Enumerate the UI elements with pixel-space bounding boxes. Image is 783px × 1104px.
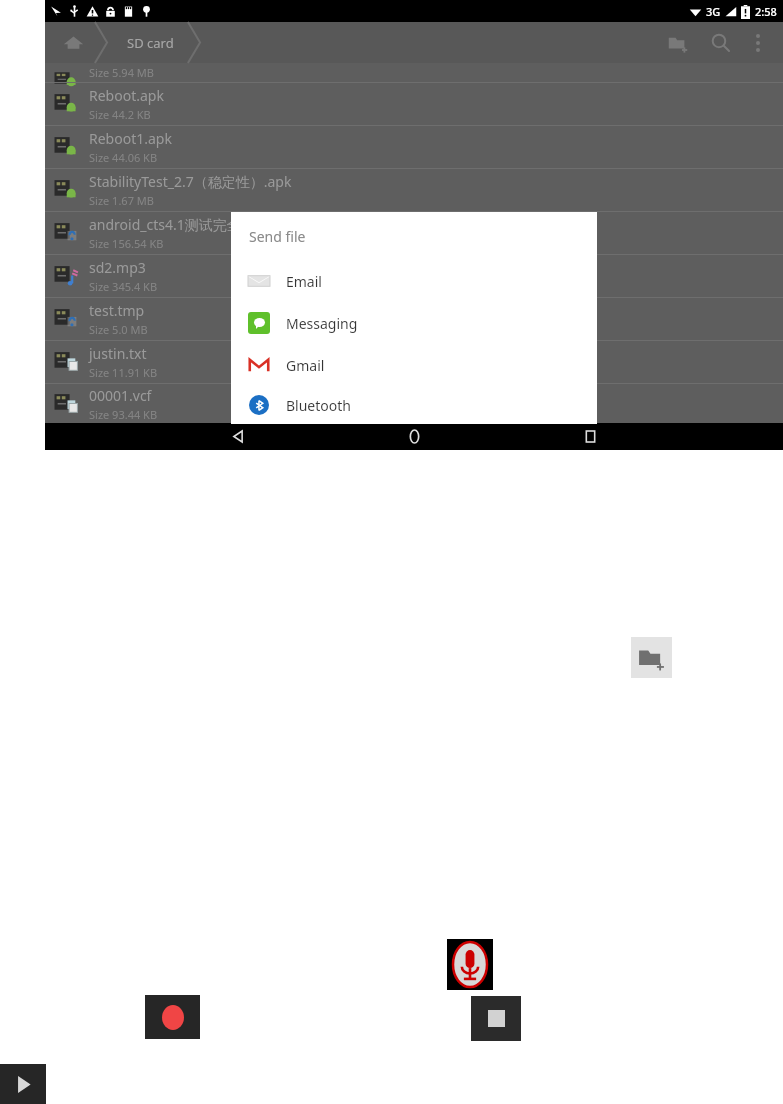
staticText: Size 93.44 KB [89, 407, 158, 422]
staticText: 3G [706, 4, 721, 19]
button[interactable]: 00001.vcf [45, 384, 783, 423]
button[interactable]: New folder [631, 637, 672, 678]
staticText: Size 345.4 KB [89, 279, 158, 294]
button[interactable]: Stop [471, 996, 521, 1041]
staticText: justin.txt [89, 344, 147, 363]
button[interactable]: Play [0, 1064, 46, 1104]
button[interactable]: Email [231, 260, 597, 302]
staticText: test.tmp [89, 301, 145, 320]
button[interactable]: New folder [657, 22, 699, 63]
staticText: android_cts4.1测试完全版.apk [89, 215, 283, 234]
staticText: Size 44.06 KB [89, 150, 158, 165]
button[interactable]: Recent apps [567, 423, 613, 450]
staticText: Size 5.94 MB [89, 65, 154, 80]
button[interactable]: Gmail [231, 344, 597, 386]
button[interactable]: Bluetooth [231, 386, 597, 424]
staticText: sd2.mp3 [89, 258, 146, 277]
button[interactable]: justin.txt [45, 341, 783, 383]
staticText: Size 156.54 KB [89, 236, 164, 251]
button[interactable]: sd2.mp3 [45, 255, 783, 297]
button[interactable]: More options [741, 26, 775, 60]
button[interactable]: StabilityTest_2.7（稳定性）.apk [45, 169, 783, 211]
staticText: Size 5.0 MB [89, 322, 148, 337]
button[interactable]: Reboot1.apk [45, 126, 783, 168]
button[interactable]: Back [215, 423, 261, 450]
staticText: Size 44.2 KB [89, 107, 151, 122]
staticText: Size 1.67 MB [89, 193, 154, 208]
staticText: Reboot1.apk [89, 129, 172, 148]
button[interactable]: SD card [127, 22, 174, 63]
staticText: 00001.vcf [89, 386, 152, 405]
button[interactable]: Record voice [447, 939, 493, 990]
staticText: 2:58 [755, 4, 777, 19]
staticText: Gmail [286, 356, 325, 375]
staticText: Reboot.apk [89, 86, 164, 105]
button[interactable]: Size 5.94 MB [45, 63, 783, 82]
staticText: SD card [127, 34, 174, 52]
staticText: Send file [249, 227, 306, 246]
button[interactable]: Search [699, 22, 741, 63]
staticText: Email [286, 272, 322, 291]
staticText: Bluetooth [286, 396, 351, 415]
button[interactable]: test.tmp [45, 298, 783, 340]
button[interactable]: Reboot.apk [45, 83, 783, 125]
button[interactable]: android_cts4.1测试完全版.apk [45, 212, 783, 254]
button[interactable]: Record [145, 995, 200, 1039]
staticText: StabilityTest_2.7（稳定性）.apk [89, 172, 292, 191]
staticText: Size 11.91 KB [89, 365, 158, 380]
button[interactable]: Home [51, 22, 95, 63]
button[interactable]: Home [391, 423, 437, 450]
staticText: Messaging [286, 314, 358, 333]
button[interactable]: Messaging [231, 302, 597, 344]
